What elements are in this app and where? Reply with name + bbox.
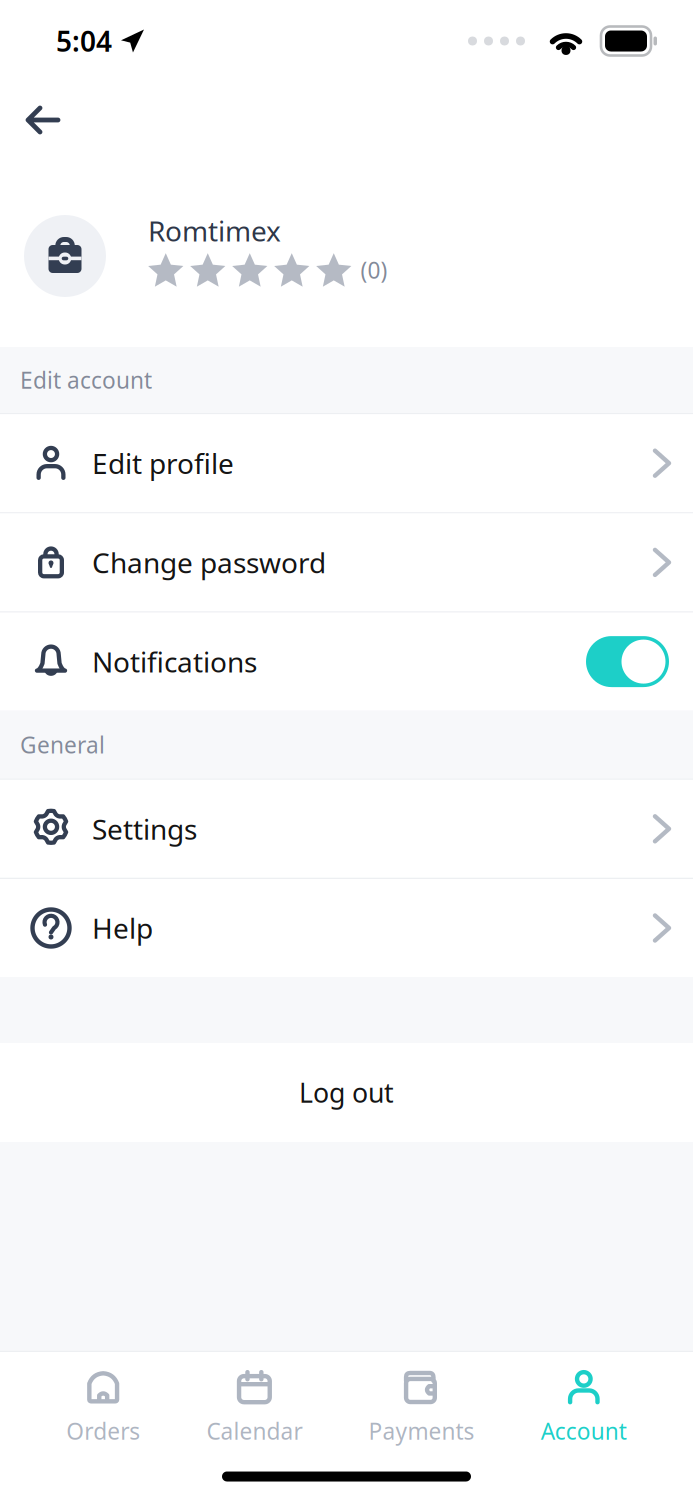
staticText: Help bbox=[92, 909, 153, 947]
button[interactable]: Calendar bbox=[206, 1352, 302, 1453]
button[interactable]: Log out bbox=[0, 1043, 693, 1142]
staticText: Orders bbox=[66, 1416, 140, 1446]
staticText: Notifications bbox=[92, 643, 257, 680]
staticText: Change password bbox=[92, 544, 326, 581]
staticText: Account bbox=[541, 1416, 627, 1446]
button[interactable]: Orders bbox=[66, 1352, 140, 1453]
button[interactable]: Payments bbox=[369, 1352, 475, 1453]
staticText: (0) bbox=[360, 255, 387, 285]
staticText: 5:04 bbox=[56, 22, 112, 60]
staticText: Romtimex bbox=[148, 212, 281, 249]
staticText: General bbox=[20, 729, 105, 760]
staticText: Calendar bbox=[206, 1416, 302, 1446]
staticText: Edit profile bbox=[92, 445, 234, 482]
staticText: Settings bbox=[92, 810, 197, 847]
button[interactable]: Account bbox=[541, 1352, 627, 1453]
staticText: Edit account bbox=[20, 365, 152, 395]
button[interactable]: Settings bbox=[0, 780, 693, 878]
button[interactable]: Change password bbox=[0, 513, 693, 611]
button[interactable]: Help bbox=[0, 879, 693, 977]
button[interactable]: Edit profile bbox=[0, 414, 693, 512]
button[interactable]: Back bbox=[0, 86, 80, 154]
staticText: Payments bbox=[369, 1416, 475, 1446]
staticText: Log out bbox=[299, 1075, 394, 1110]
button[interactable]: Notifications bbox=[0, 613, 693, 711]
